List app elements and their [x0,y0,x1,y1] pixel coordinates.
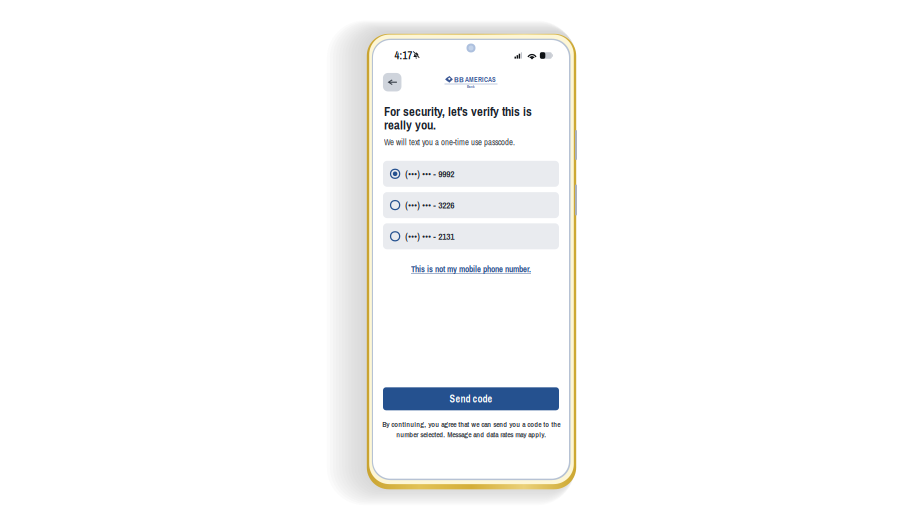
button[interactable]: This is not my mobile phone number. [373,262,569,276]
staticText: really you. [384,116,436,134]
button[interactable]: (•••) ••• - 2131 [383,223,559,249]
staticText: 4:17 [394,48,412,63]
staticText: We will text you a one-time use passcode… [384,136,515,148]
button[interactable]: Back [383,73,401,91]
button[interactable]: (•••) ••• - 3226 [383,192,559,218]
staticText: For security, let's verify this is [384,103,532,120]
staticText: Send code [449,392,492,406]
button[interactable]: (•••) ••• - 9992 [383,161,559,187]
staticText: (•••) ••• - 2131 [405,230,454,243]
staticText: (•••) ••• - 3226 [405,199,454,211]
staticText: AMERICAS [465,75,496,84]
staticText: This is not my mobile phone number. [411,263,531,275]
staticText: BB [454,74,464,85]
staticText: (•••) ••• - 9992 [405,167,454,180]
staticText: By continuing, you agree that we can sen… [382,419,560,440]
button[interactable]: Send code [383,387,559,410]
staticText: Bank [467,84,475,89]
